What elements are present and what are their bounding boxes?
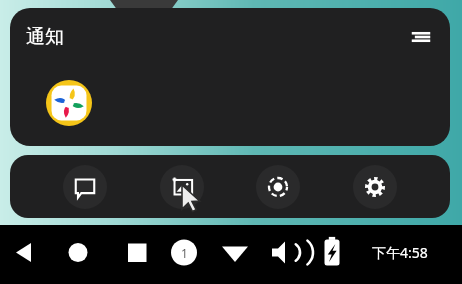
button[interactable]: App notification bbox=[46, 80, 92, 126]
staticText: 下午4:58 bbox=[372, 243, 428, 262]
button[interactable]: Messages bbox=[63, 165, 107, 209]
button[interactable]: Sort notifications bbox=[406, 22, 436, 52]
staticText: 1 bbox=[181, 245, 188, 261]
button[interactable]: Screen record bbox=[256, 165, 300, 209]
button[interactable]: Settings bbox=[353, 165, 397, 209]
staticText: 通知 bbox=[26, 25, 64, 49]
button[interactable]: 通知 bbox=[10, 8, 450, 146]
button[interactable]: Add screenshot bbox=[160, 165, 204, 209]
